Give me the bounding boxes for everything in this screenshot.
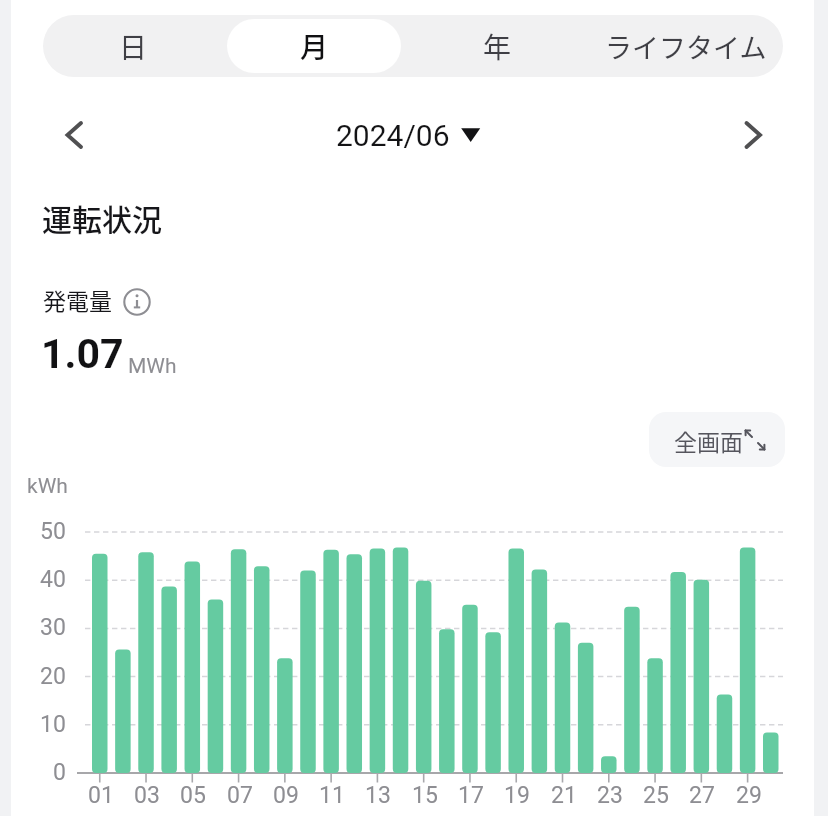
staticText: 17 <box>458 782 484 809</box>
staticText: 50 <box>40 518 66 545</box>
staticText: 13 <box>365 782 391 809</box>
staticText: 発電量 <box>43 283 112 316</box>
staticText: 1.07 <box>41 330 124 378</box>
staticText: 29 <box>736 782 762 809</box>
button[interactable]: 月 <box>227 19 401 73</box>
staticText: 20 <box>40 663 66 690</box>
staticText: 15 <box>412 782 438 809</box>
staticText: 10 <box>40 711 66 738</box>
staticText: 2024/06 <box>336 118 450 153</box>
staticText: 27 <box>689 782 715 809</box>
staticText: 年 <box>483 26 512 67</box>
staticText: 03 <box>134 782 160 809</box>
button[interactable]: Previous month <box>40 101 108 169</box>
staticText: 日 <box>119 26 148 67</box>
staticText: 全画面 <box>674 424 743 457</box>
staticText: 07 <box>227 782 253 809</box>
staticText: 05 <box>180 782 206 809</box>
button[interactable]: 2024/06 <box>323 116 493 152</box>
staticText: 運転状況 <box>42 196 162 239</box>
staticText: ライフタイム <box>605 27 767 66</box>
staticText: 25 <box>643 782 669 809</box>
staticText: 11 <box>319 782 345 809</box>
button[interactable]: 年 <box>406 19 589 73</box>
staticText: 21 <box>551 782 577 809</box>
staticText: MWh <box>128 354 177 379</box>
staticText: 01 <box>88 782 114 809</box>
button[interactable]: About power generation <box>121 286 153 318</box>
button[interactable]: Full screen <box>649 412 785 467</box>
staticText: 09 <box>273 782 299 809</box>
staticText: 月 <box>300 26 329 67</box>
staticText: 19 <box>504 782 530 809</box>
button[interactable]: 日 <box>43 19 224 73</box>
staticText: kWh <box>27 474 68 499</box>
button[interactable]: Next month <box>717 101 785 169</box>
staticText: 0 <box>53 759 66 786</box>
staticText: 23 <box>597 782 623 809</box>
staticText: 40 <box>40 566 66 593</box>
button[interactable]: ライフタイム <box>592 19 779 73</box>
staticText: 30 <box>40 614 66 641</box>
